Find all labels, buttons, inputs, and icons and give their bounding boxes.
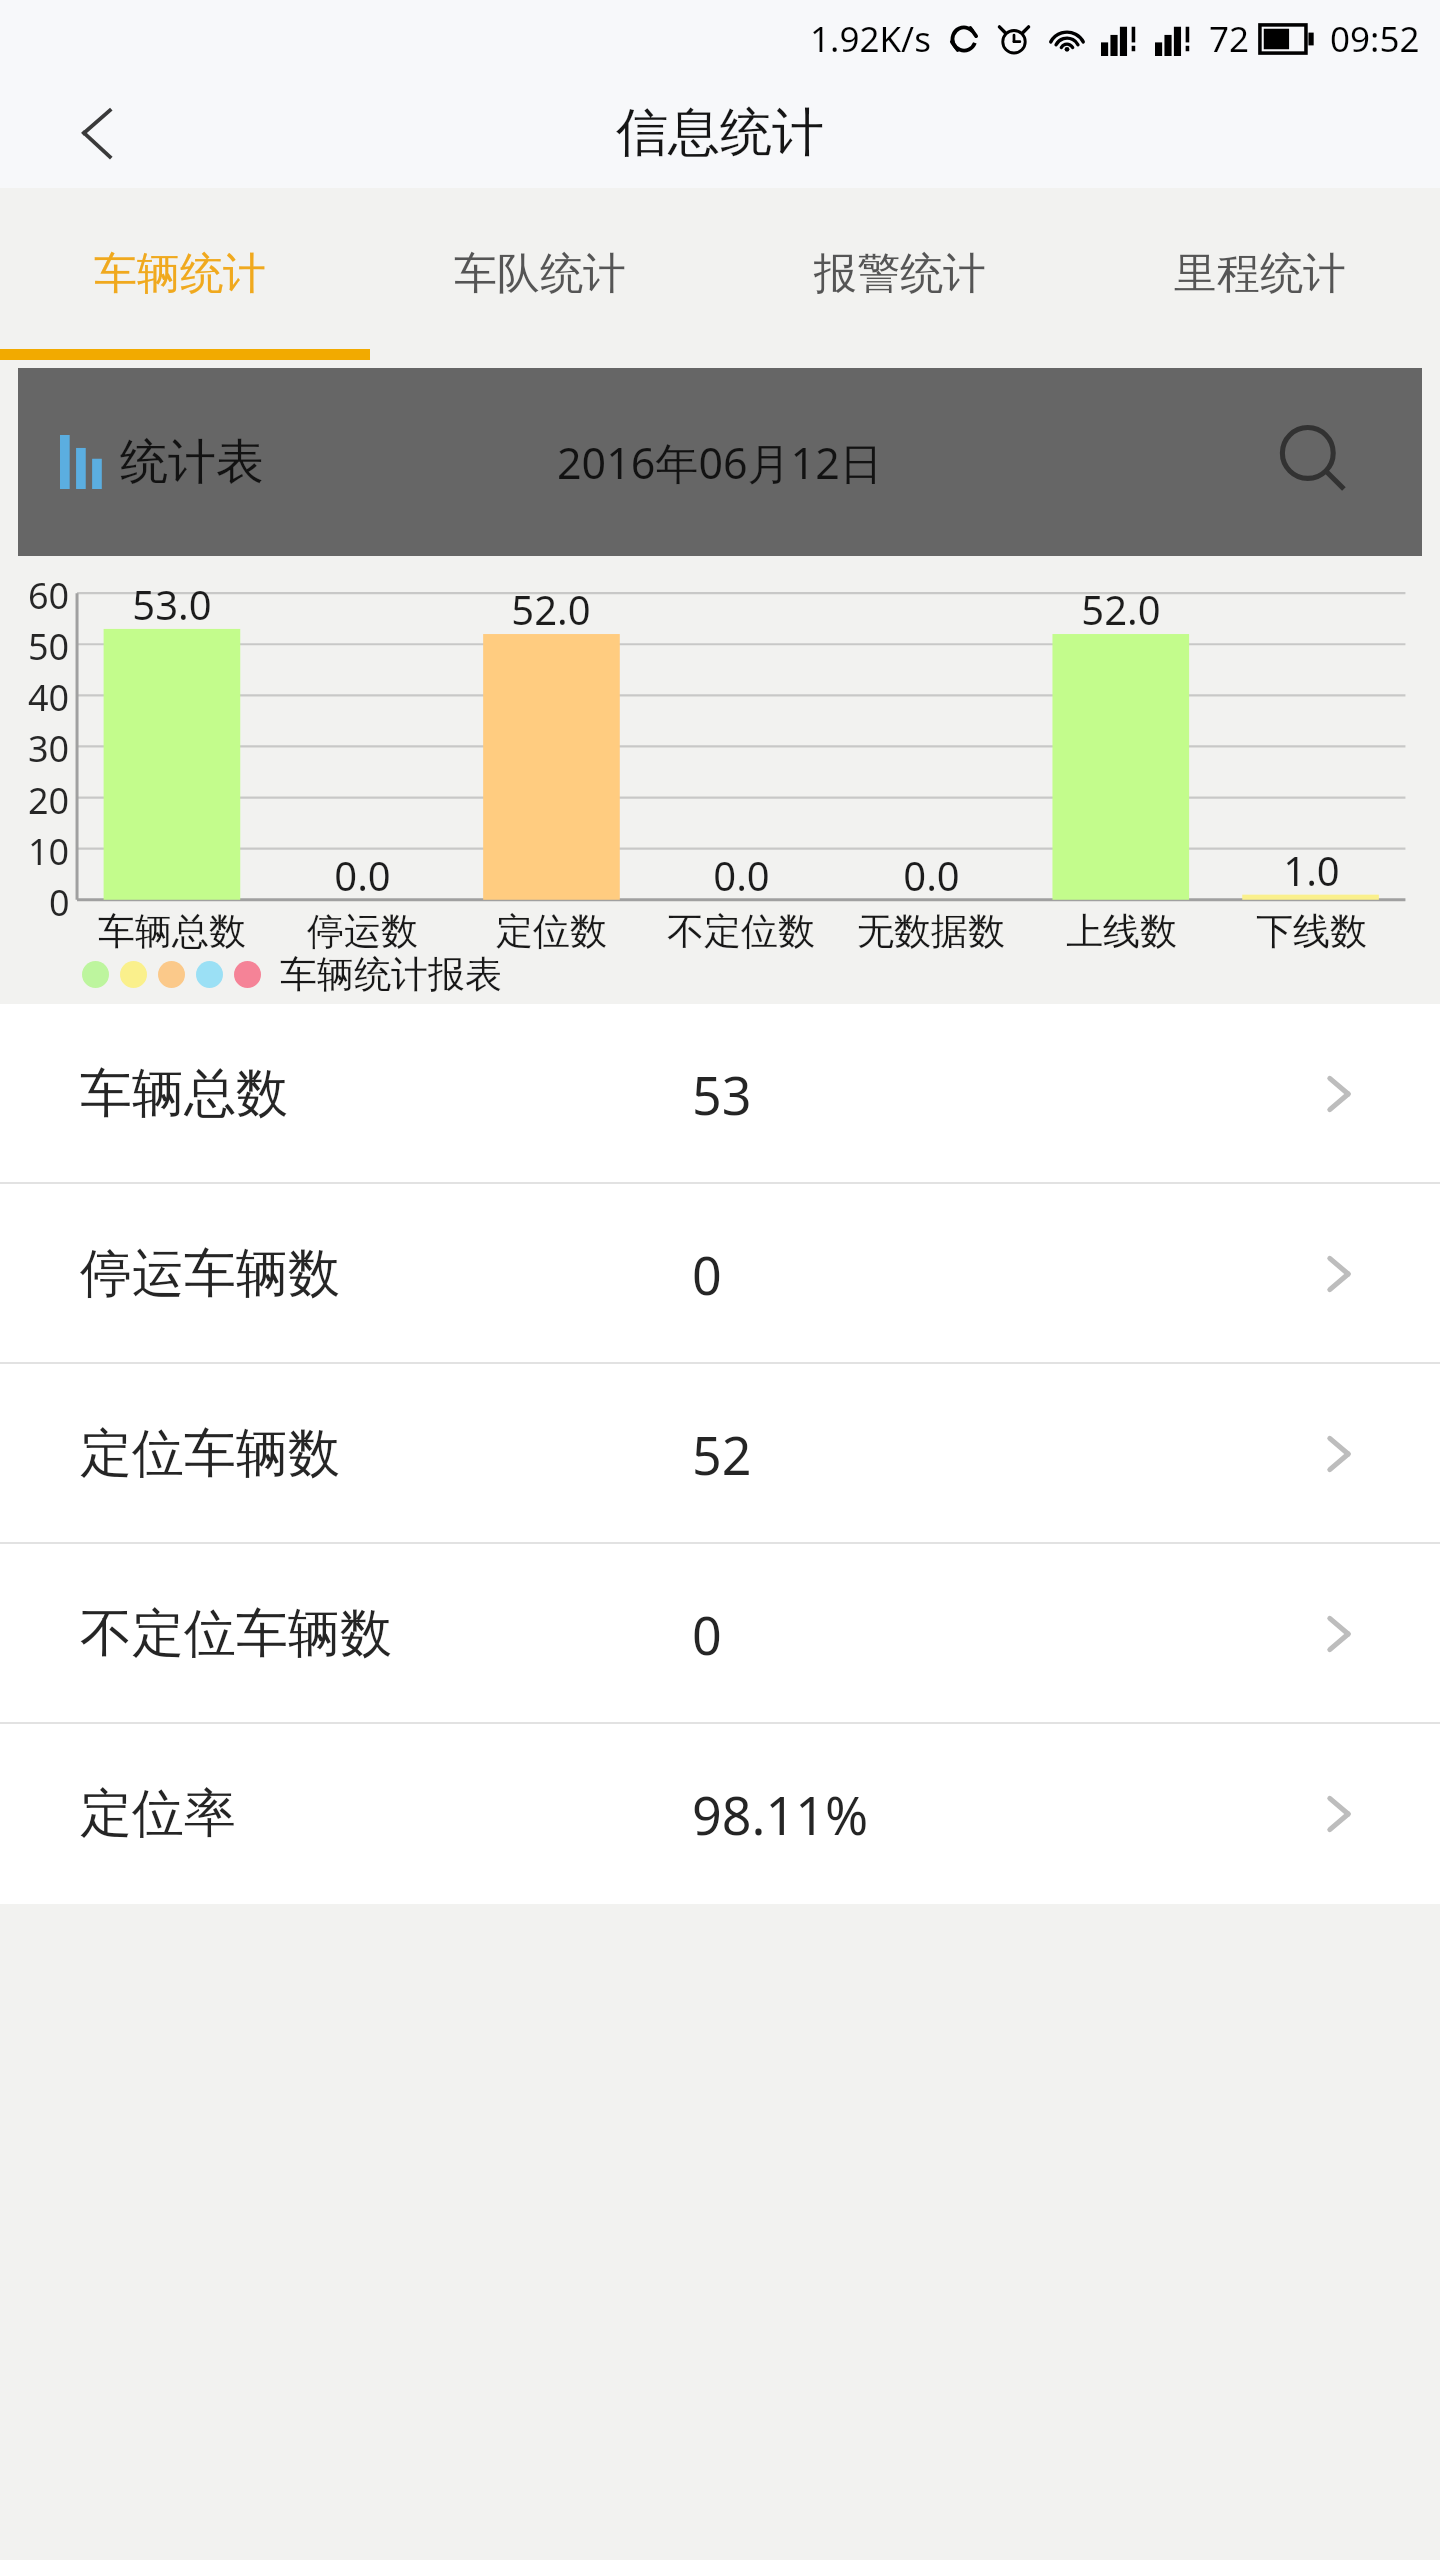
staticText: 停运车辆数 xyxy=(80,1241,340,1307)
button[interactable]: 车队统计 xyxy=(360,188,720,360)
button[interactable]: 车辆统计 xyxy=(0,188,360,360)
staticText: 60 xyxy=(28,571,70,620)
button[interactable]: 统计表 xyxy=(60,432,264,492)
staticText: 53.0 xyxy=(132,577,212,631)
staticText: 52.0 xyxy=(511,582,591,636)
staticText: 0 xyxy=(692,1239,722,1310)
staticText: 0.0 xyxy=(334,848,391,902)
staticText: 定位率 xyxy=(80,1781,236,1847)
staticText: 0.0 xyxy=(713,848,770,902)
staticText: 40 xyxy=(28,673,70,722)
staticText: 52.0 xyxy=(1081,582,1161,636)
button[interactable]: 里程统计 xyxy=(1080,188,1440,360)
staticText: 10 xyxy=(28,827,70,876)
button[interactable]: 停运车辆数 xyxy=(0,1184,1440,1364)
staticText: 定位车辆数 xyxy=(80,1421,340,1487)
button[interactable]: Back xyxy=(58,93,138,173)
staticText: 0.0 xyxy=(903,848,960,902)
staticText: 52 xyxy=(692,1419,752,1490)
staticText: 定位数 xyxy=(496,908,607,955)
staticText: 不定位车辆数 xyxy=(80,1601,392,1667)
staticText: 无数据数 xyxy=(857,908,1005,955)
button[interactable]: 不定位车辆数 xyxy=(0,1544,1440,1724)
staticText: 统计表 xyxy=(120,432,264,492)
button[interactable]: 车辆总数 xyxy=(0,1004,1440,1184)
staticText: 车队统计 xyxy=(454,247,626,301)
button[interactable]: 定位率 xyxy=(0,1724,1440,1904)
staticText: 车辆总数 xyxy=(98,908,246,955)
staticText: 53 xyxy=(692,1059,752,1130)
staticText: 0 xyxy=(692,1599,722,1670)
staticText: 报警统计 xyxy=(814,247,986,301)
staticText: 98.11% xyxy=(692,1779,869,1850)
staticText: 上线数 xyxy=(1066,908,1177,955)
staticText: 车辆统计报表 xyxy=(280,951,502,998)
staticText: 72 xyxy=(1209,15,1250,63)
staticText: 30 xyxy=(28,724,70,773)
button[interactable]: 定位车辆数 xyxy=(0,1364,1440,1544)
staticText: 停运数 xyxy=(307,908,418,955)
staticText: 车辆总数 xyxy=(80,1061,288,1127)
staticText: 信息统计 xyxy=(616,100,824,166)
button[interactable]: Search xyxy=(1266,412,1366,512)
staticText: 0 xyxy=(49,878,70,927)
staticText: 下线数 xyxy=(1256,908,1367,955)
staticText: 里程统计 xyxy=(1174,247,1346,301)
staticText: 2016年06月12日 xyxy=(557,433,883,492)
button[interactable]: 报警统计 xyxy=(720,188,1080,360)
staticText: 不定位数 xyxy=(667,908,815,955)
staticText: 1.0 xyxy=(1283,843,1340,897)
staticText: 20 xyxy=(28,776,70,825)
staticText: 1.92K/s xyxy=(810,15,931,63)
staticText: 09:52 xyxy=(1330,15,1420,63)
staticText: 50 xyxy=(28,622,70,671)
staticText: 车辆统计 xyxy=(94,247,266,301)
